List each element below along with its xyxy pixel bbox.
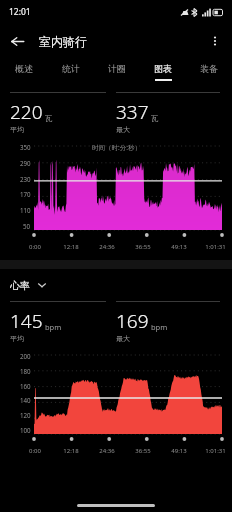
staticText: 0:00 <box>29 243 41 251</box>
button[interactable]: 概述 <box>0 58 47 86</box>
button[interactable]: 计圈 <box>94 58 140 86</box>
staticText: 平均 <box>10 125 24 134</box>
staticText: 169 <box>116 308 149 334</box>
button[interactable]: 装备 <box>186 58 232 86</box>
staticText: 220 <box>10 99 43 125</box>
staticText: 概述 <box>15 63 33 74</box>
staticText: 145 <box>10 308 43 334</box>
staticText: 12:18 <box>63 447 79 455</box>
staticText: 计圈 <box>108 63 126 74</box>
staticText: bpm <box>45 322 62 332</box>
button[interactable]: 图表 <box>140 58 186 86</box>
staticText: 最大 <box>116 334 130 343</box>
button[interactable]: 统计 <box>47 58 94 86</box>
staticText: 瓦 <box>151 114 159 123</box>
staticText: 12:18 <box>63 243 79 251</box>
staticText: 时间（时:分:秒） <box>92 143 141 152</box>
staticText: 100 <box>20 426 31 434</box>
button[interactable]: Back <box>0 24 34 58</box>
staticText: 室内骑行 <box>39 34 87 49</box>
staticText: 290 <box>20 159 31 167</box>
staticText: 230 <box>20 175 31 183</box>
staticText: 1:01:31 <box>205 447 226 455</box>
staticText: 0:00 <box>29 447 41 455</box>
button[interactable]: More options <box>198 24 232 58</box>
staticText: 平均 <box>10 334 24 343</box>
staticText: 瓦 <box>45 114 53 123</box>
staticText: 36:55 <box>135 447 151 455</box>
button[interactable]: 心率 <box>10 277 222 293</box>
staticText: 180 <box>20 367 31 375</box>
staticText: 49:13 <box>171 243 187 251</box>
staticText: 最大 <box>116 125 130 134</box>
staticText: 12:01 <box>9 6 31 18</box>
staticText: bpm <box>151 322 168 332</box>
staticText: 统计 <box>62 63 80 74</box>
staticText: 36:55 <box>135 243 151 251</box>
staticText: 50 <box>23 222 31 230</box>
staticText: 1:01:31 <box>205 243 226 251</box>
staticText: 120 <box>20 411 31 419</box>
staticText: 110 <box>20 206 31 214</box>
staticText: 24:36 <box>99 243 115 251</box>
staticText: 心率 <box>10 279 30 292</box>
staticText: 140 <box>20 396 31 404</box>
staticText: 160 <box>20 382 31 390</box>
staticText: 图表 <box>154 63 172 74</box>
staticText: 170 <box>20 190 31 198</box>
staticText: 24:36 <box>99 447 115 455</box>
staticText: 337 <box>116 99 149 125</box>
staticText: 装备 <box>200 63 218 74</box>
staticText: 350 <box>20 143 31 151</box>
staticText: 49:13 <box>171 447 187 455</box>
staticText: 200 <box>20 352 31 360</box>
